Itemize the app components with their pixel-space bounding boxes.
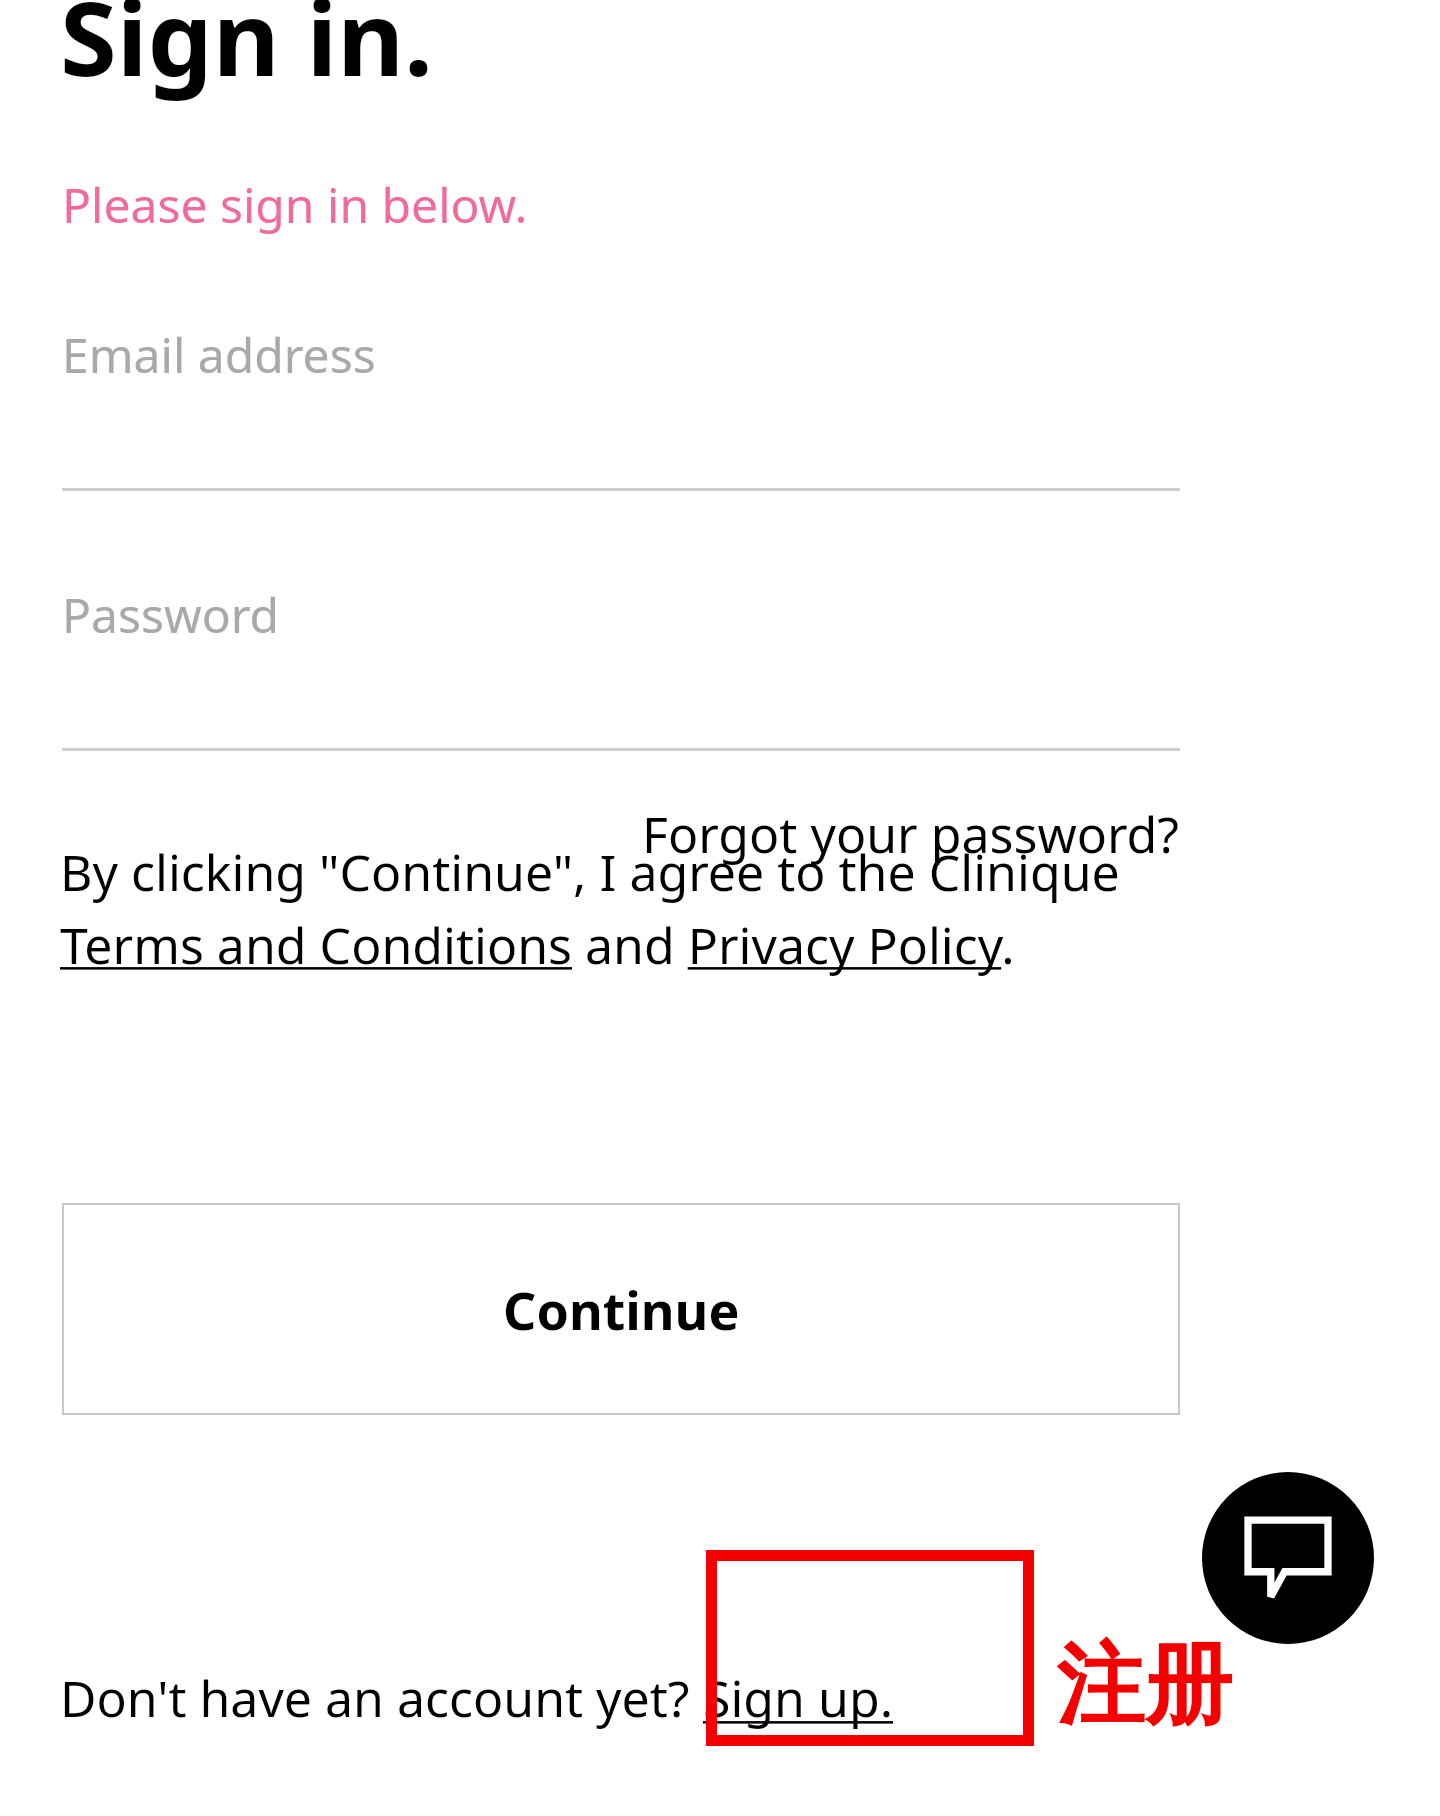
button[interactable]: Forgot your password? (62, 800, 1180, 868)
staticText: By clicking "Continue", I agree to the C… (60, 838, 1190, 978)
staticText: Sign up. (703, 1664, 894, 1732)
button[interactable]: Open chat (1202, 1472, 1374, 1644)
staticText: Don't have an account yet? (60, 1664, 703, 1732)
staticText: Forgot your password? (642, 800, 1180, 868)
button[interactable]: Continue (62, 1203, 1180, 1415)
staticText: Password (62, 582, 280, 647)
button[interactable]: Password (62, 560, 1180, 750)
staticText: Please sign in below. (62, 172, 528, 237)
staticText: 注册 (1056, 1630, 1232, 1741)
button[interactable]: Sign up. (703, 1664, 894, 1732)
staticText: Email address (62, 322, 376, 387)
staticText: Sign in. (60, 0, 434, 106)
staticText: Continue (503, 1274, 740, 1345)
button[interactable]: Email address (62, 300, 1180, 492)
